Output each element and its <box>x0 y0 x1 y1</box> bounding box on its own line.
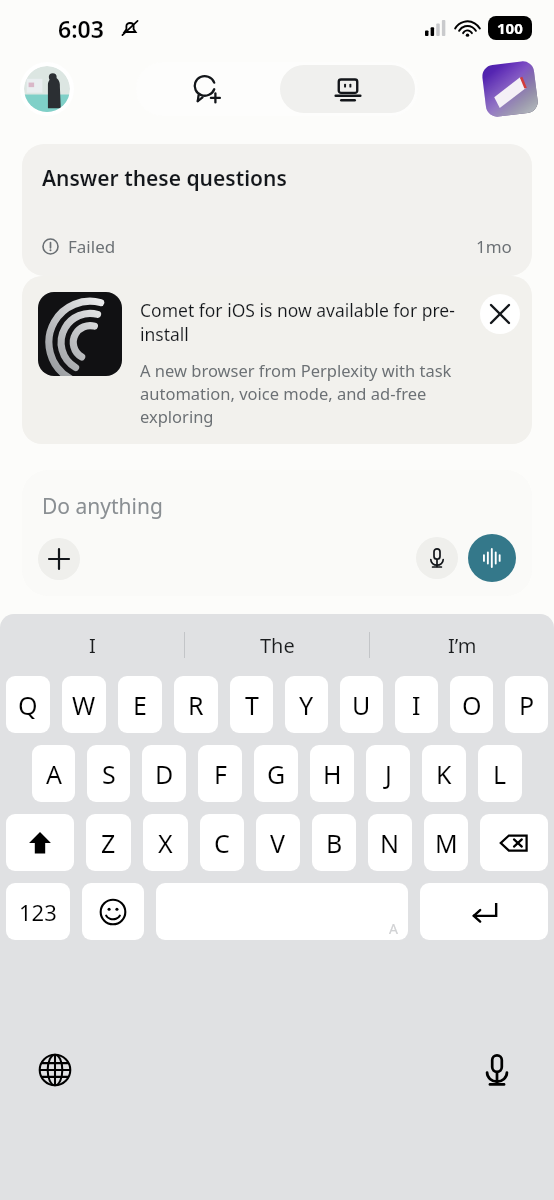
button[interactable]: K <box>422 745 466 802</box>
button[interactable]: Open app <box>482 61 538 117</box>
staticText: Z <box>101 826 116 860</box>
staticText: P <box>519 688 535 722</box>
staticText: U <box>352 688 371 722</box>
staticText: A <box>46 757 62 791</box>
staticText: H <box>323 757 342 791</box>
button[interactable]: S <box>87 745 130 802</box>
button[interactable]: New chat <box>136 62 277 116</box>
button[interactable]: I <box>0 614 184 676</box>
button[interactable]: B <box>312 814 356 871</box>
button[interactable]: I’m <box>370 614 554 676</box>
button[interactable]: J <box>366 745 410 802</box>
button[interactable]: 123 <box>6 883 70 940</box>
staticText: L <box>493 757 507 791</box>
staticText: M <box>435 826 458 860</box>
button[interactable]: Y <box>285 676 328 733</box>
button[interactable]: G <box>254 745 298 802</box>
staticText: 100 <box>497 18 523 38</box>
button[interactable]: I <box>395 676 438 733</box>
button[interactable]: R <box>174 676 218 733</box>
button[interactable]: Backspace <box>480 814 548 871</box>
staticText: The <box>260 632 295 659</box>
button[interactable]: W <box>62 676 106 733</box>
staticText: Comet for iOS is now available for pre-i… <box>140 298 480 346</box>
staticText: F <box>214 757 227 791</box>
button[interactable]: X <box>143 814 188 871</box>
button[interactable]: Comet for iOS is now available for pre-i… <box>22 276 532 444</box>
staticText: X <box>158 826 173 860</box>
button[interactable]: Z <box>86 814 131 871</box>
button[interactable]: U <box>340 676 383 733</box>
button[interactable]: Do anything <box>22 470 532 596</box>
button[interactable]: Add attachment <box>38 538 80 580</box>
button[interactable]: Dictate <box>416 537 458 579</box>
staticText: D <box>155 757 174 791</box>
button[interactable]: P <box>505 676 548 733</box>
button[interactable]: C <box>200 814 244 871</box>
button[interactable]: Change keyboard <box>32 1047 78 1093</box>
staticText: E <box>133 688 147 722</box>
button[interactable]: N <box>368 814 412 871</box>
staticText: K <box>436 757 452 791</box>
button[interactable]: A <box>32 745 75 802</box>
staticText: V <box>270 826 286 860</box>
button[interactable]: M <box>424 814 468 871</box>
button[interactable]: The <box>185 614 369 676</box>
staticText: O <box>462 688 482 722</box>
staticText: A <box>389 919 398 938</box>
staticText: 123 <box>19 897 57 927</box>
button[interactable]: Desktop mode <box>280 65 415 113</box>
staticText: C <box>214 826 230 860</box>
staticText: A new browser from Perplexity with task … <box>140 359 480 428</box>
staticText: N <box>380 826 400 860</box>
staticText: Q <box>18 688 38 722</box>
button[interactable]: Emoji <box>82 883 144 940</box>
staticText: Answer these questions <box>42 164 287 193</box>
staticText: W <box>72 688 96 722</box>
button[interactable]: Q <box>6 676 50 733</box>
staticText: J <box>385 757 392 791</box>
button[interactable]: L <box>478 745 522 802</box>
staticText: 6:03 <box>58 13 104 44</box>
staticText: R <box>188 688 204 722</box>
staticText: G <box>267 757 286 791</box>
staticText: 1mo <box>476 235 512 258</box>
staticText: S <box>102 757 116 791</box>
button[interactable]: Dismiss <box>480 294 520 334</box>
button[interactable]: Voice mode <box>468 534 516 582</box>
staticText: I <box>412 688 421 722</box>
button[interactable]: Return <box>420 883 548 940</box>
staticText: I <box>89 632 96 659</box>
button[interactable]: Profile <box>20 62 74 116</box>
button[interactable]: Shift <box>6 814 74 871</box>
button[interactable]: D <box>142 745 186 802</box>
button[interactable]: O <box>450 676 493 733</box>
button[interactable]: T <box>230 676 273 733</box>
button[interactable]: E <box>118 676 162 733</box>
staticText: Failed <box>68 235 116 258</box>
staticText: Y <box>299 688 314 722</box>
button[interactable]: Answer these questions <box>22 144 532 276</box>
staticText: Do anything <box>42 492 163 521</box>
staticText: I’m <box>448 632 477 659</box>
staticText: T <box>245 688 259 722</box>
button[interactable]: F <box>198 745 242 802</box>
button[interactable]: V <box>256 814 300 871</box>
staticText: B <box>326 826 343 860</box>
button[interactable]: Voice input <box>474 1047 520 1093</box>
button[interactable]: H <box>310 745 354 802</box>
